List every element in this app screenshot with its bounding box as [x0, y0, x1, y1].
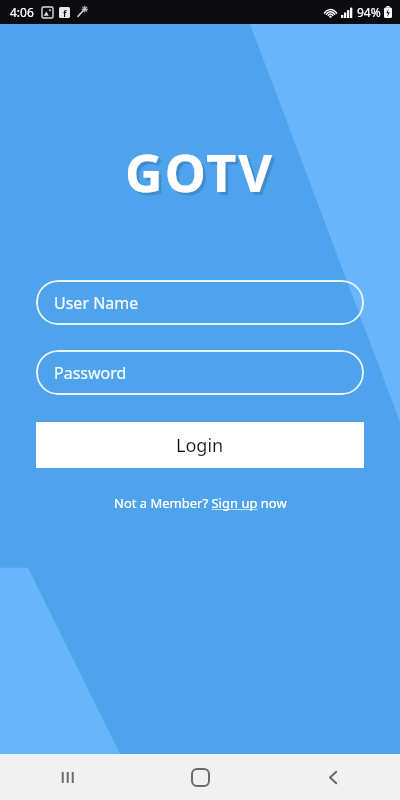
- staticText: Not a Member? Sign up now: [114, 494, 287, 512]
- staticText: 4:06: [10, 4, 34, 20]
- staticText: Login: [176, 433, 224, 458]
- button[interactable]: Password: [36, 350, 364, 395]
- staticText: GOTV: [128, 139, 278, 210]
- staticText: User Name: [54, 292, 139, 314]
- button[interactable]: User Name: [36, 280, 364, 325]
- staticText: 94%: [357, 4, 381, 20]
- button[interactable]: Home: [134, 754, 267, 800]
- staticText: Password: [54, 362, 127, 384]
- button[interactable]: Back: [267, 754, 400, 800]
- button[interactable]: Login: [36, 422, 364, 468]
- staticText: f: [63, 7, 67, 18]
- staticText: GOTV: [125, 136, 275, 207]
- button[interactable]: Not a Member? Sign up now: [106, 492, 295, 514]
- button[interactable]: Recents: [0, 754, 134, 800]
